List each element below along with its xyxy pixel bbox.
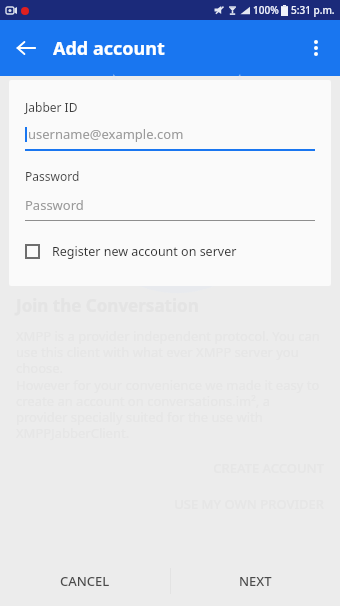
button[interactable]: More options (296, 28, 336, 68)
staticText: Join the Conversation (16, 294, 199, 317)
staticText: 5:31 p.m. (291, 3, 335, 17)
button[interactable]: Register new account on server (25, 243, 315, 260)
button[interactable]: username@example.com (25, 125, 315, 151)
button[interactable]: Back (4, 26, 48, 70)
staticText: 100% (253, 3, 279, 17)
button[interactable]: CANCEL (0, 556, 170, 606)
staticText: NEXT (239, 572, 272, 590)
staticText: Register new account on server (52, 243, 237, 260)
staticText: CANCEL (60, 572, 110, 590)
button[interactable]: Password (25, 196, 315, 221)
button[interactable]: NEXT (170, 556, 340, 606)
staticText: Password (25, 168, 80, 184)
staticText: Password (25, 196, 84, 214)
staticText: Add account (53, 36, 165, 61)
staticText: username@example.com (28, 125, 184, 143)
staticText: Jabber ID (25, 99, 78, 115)
